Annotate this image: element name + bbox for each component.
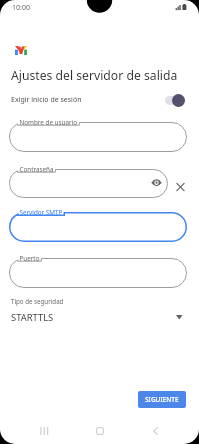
staticText: Tipo de seguridad	[11, 297, 64, 305]
button[interactable]: Mostrar contraseña	[151, 177, 162, 188]
button[interactable]	[9, 258, 187, 288]
button[interactable]	[9, 169, 168, 198]
button[interactable]: Borrar	[176, 181, 185, 190]
button[interactable]	[9, 212, 187, 242]
button[interactable]: Inicio	[87, 419, 112, 443]
staticText: STARTTLS	[11, 311, 54, 324]
staticText: Exigir inicio de sesión	[11, 95, 82, 105]
staticText: SIGUIENTE	[145, 395, 179, 404]
button[interactable]: SIGUIENTE	[138, 391, 186, 408]
staticText: Ajustes del servidor de salida	[11, 67, 178, 84]
button[interactable]	[9, 122, 187, 152]
button[interactable]: Expandir	[172, 310, 186, 322]
staticText: 10:00	[12, 3, 30, 13]
button[interactable]: Recientes	[32, 419, 57, 443]
button[interactable]: Exigir inicio de sesión	[0, 90, 199, 110]
button[interactable]: Atrás	[143, 419, 168, 443]
